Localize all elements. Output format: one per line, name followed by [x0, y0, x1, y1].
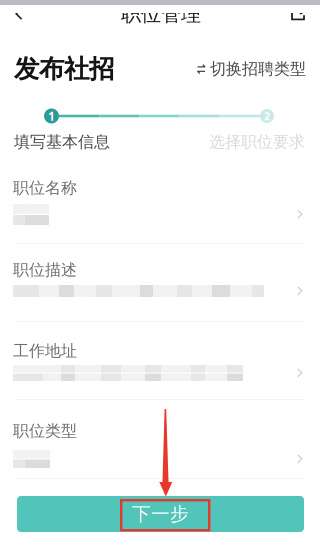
button[interactable]: 切换招聘类型 [197, 59, 306, 79]
button[interactable]: 工作地址 [0, 322, 320, 399]
staticText: 1 [48, 108, 55, 124]
button[interactable]: 职位名称 [0, 181, 320, 243]
staticText: 职位名称 [13, 178, 77, 198]
staticText: 填写基本信息 [14, 132, 110, 152]
staticText: 发布社招 [14, 53, 114, 84]
staticText: 切换招聘类型 [210, 59, 306, 79]
staticText: 工作地址 [13, 341, 77, 361]
staticText: 职位描述 [13, 260, 77, 280]
staticText: 2 [264, 109, 270, 123]
staticText: 选择职位要求 [209, 132, 305, 152]
staticText: 职位类型 [13, 421, 77, 441]
button[interactable]: 职位类型 [0, 400, 320, 478]
button[interactable]: 下一步 [17, 496, 304, 532]
button[interactable]: Share [273, 7, 320, 21]
staticText: 职位管理 [121, 2, 201, 26]
staticText: 下一步 [132, 502, 189, 525]
button[interactable]: Back [0, 7, 49, 21]
button[interactable]: 职位描述 [0, 244, 320, 321]
